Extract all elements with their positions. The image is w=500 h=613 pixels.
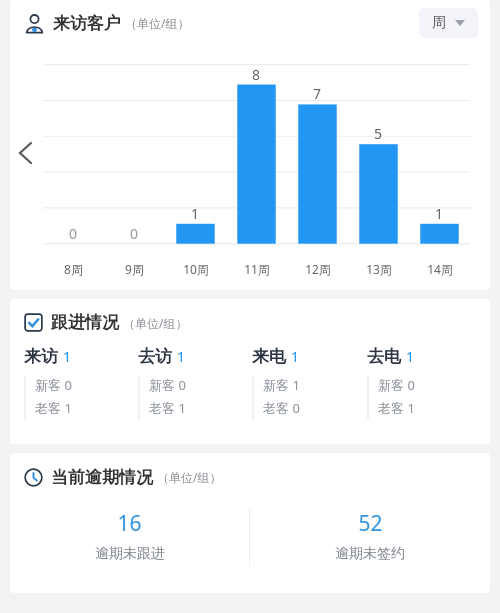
button[interactable]: 去访 — [138, 346, 252, 420]
staticText: 14周 — [427, 261, 453, 277]
staticText: 去访 — [138, 346, 172, 367]
staticText: 16 — [117, 509, 142, 538]
staticText: 逾期未跟进 — [95, 545, 165, 563]
staticText: 52 — [358, 509, 383, 538]
staticText: 1 — [191, 204, 200, 223]
staticText: 老客 1 — [378, 399, 415, 417]
staticText: 来电 — [252, 346, 286, 367]
staticText: 去电 — [367, 346, 401, 367]
staticText: 8 — [252, 65, 261, 84]
staticText: 来访 — [24, 346, 58, 367]
staticText: （单位/组） — [157, 469, 222, 485]
staticText: 新客 0 — [149, 376, 186, 394]
staticText: 老客 1 — [149, 399, 186, 417]
staticText: 新客 1 — [263, 376, 300, 394]
staticText: 1 — [63, 347, 72, 366]
staticText: 13周 — [366, 261, 392, 277]
staticText: 1 — [406, 347, 415, 366]
staticText: 11周 — [244, 261, 270, 277]
button[interactable]: Previous — [10, 138, 40, 168]
button[interactable]: 来电 — [252, 346, 367, 420]
staticText: 5 — [374, 124, 383, 143]
staticText: 新客 0 — [35, 376, 72, 394]
staticText: （单位/组） — [123, 315, 188, 331]
staticText: 10周 — [183, 261, 209, 277]
staticText: 0 — [69, 224, 78, 243]
staticText: 8周 — [64, 261, 83, 277]
staticText: 7 — [313, 84, 322, 103]
button[interactable]: 来访 — [24, 346, 138, 420]
staticText: 1 — [177, 347, 186, 366]
staticText: 逾期未签约 — [335, 545, 405, 563]
staticText: 跟进情况 — [51, 312, 119, 333]
staticText: 周 — [432, 14, 446, 32]
button[interactable]: 16 — [10, 509, 249, 563]
staticText: 来访客户 — [53, 13, 121, 34]
staticText: 新客 0 — [378, 376, 415, 394]
staticText: 9周 — [125, 261, 144, 277]
staticText: 0 — [130, 224, 139, 243]
button[interactable]: 周 — [419, 8, 478, 38]
staticText: 1 — [291, 347, 300, 366]
staticText: （单位/组） — [125, 15, 190, 31]
staticText: 当前逾期情况 — [51, 467, 153, 488]
button[interactable]: 52 — [250, 509, 490, 563]
staticText: 老客 0 — [263, 399, 300, 417]
staticText: 老客 1 — [35, 399, 72, 417]
staticText: 1 — [435, 204, 444, 223]
staticText: 12周 — [305, 261, 331, 277]
button[interactable]: 去电 — [367, 346, 482, 420]
